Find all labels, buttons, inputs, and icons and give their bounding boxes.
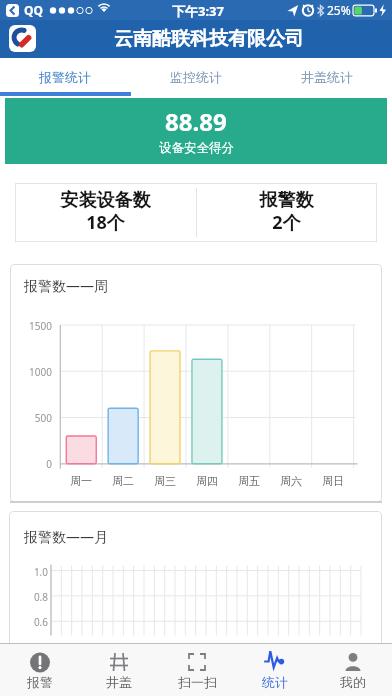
staticText: 井盖统计 [301, 69, 353, 85]
button[interactable]: 报警 [0, 643, 79, 696]
button[interactable]: 井盖 [79, 643, 158, 696]
staticText: 1500 [24, 319, 52, 333]
staticText: 2个 [196, 210, 377, 235]
staticText: 下午3:37 [172, 2, 224, 20]
staticText: 1.0 [21, 565, 48, 579]
staticText: 云南酷联科技有限公司 [114, 27, 304, 51]
staticText: 报警统计 [39, 69, 91, 85]
staticText: 设备安全得分 [159, 140, 234, 156]
staticText: 周一 [59, 474, 103, 488]
button[interactable]: 统计 [236, 643, 314, 696]
staticText: 监控统计 [170, 69, 222, 85]
staticText: 500 [24, 411, 52, 425]
button[interactable]: 监控统计 [130, 58, 261, 95]
button[interactable]: 88.89 [5, 98, 387, 164]
button[interactable]: 井盖统计 [261, 58, 392, 95]
staticText: 报警数——月 [24, 527, 108, 546]
staticText: 统计 [262, 674, 288, 690]
staticText: QQ [24, 2, 43, 18]
staticText: 报警数 [196, 189, 377, 212]
staticText: 1000 [24, 365, 52, 379]
button[interactable] [196, 183, 377, 242]
button[interactable] [15, 183, 196, 242]
staticText: 周二 [101, 474, 145, 488]
button[interactable]: 报警统计 [0, 58, 130, 95]
staticText: 我的 [340, 674, 366, 690]
staticText: 0.8 [21, 590, 48, 604]
staticText: 周三 [143, 474, 187, 488]
staticText: 周四 [185, 474, 229, 488]
button[interactable]: 扫一扫 [158, 643, 236, 696]
staticText: 周五 [227, 474, 271, 488]
staticText: 0 [24, 457, 52, 471]
staticText: 88.89 [165, 105, 227, 138]
staticText: 报警 [27, 674, 53, 690]
staticText: 周日 [311, 474, 355, 488]
staticText: 扫一扫 [178, 674, 217, 690]
staticText: 25% [327, 2, 351, 18]
staticText: 18个 [15, 210, 196, 235]
staticText: 0.6 [21, 615, 48, 629]
staticText: 安装设备数 [15, 189, 196, 212]
staticText: 周六 [269, 474, 313, 488]
button[interactable]: 我的 [314, 643, 392, 696]
staticText: 井盖 [106, 674, 132, 690]
staticText: 报警数——周 [24, 276, 108, 295]
